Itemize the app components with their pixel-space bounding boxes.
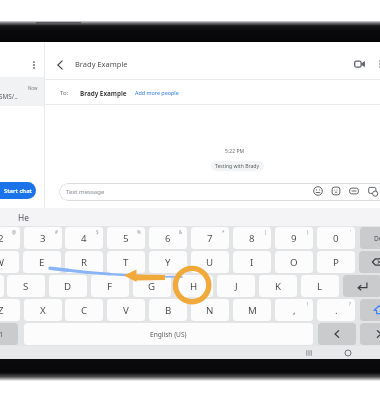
button[interactable]: Text message [59, 183, 380, 201]
button[interactable]: J [217, 275, 255, 297]
button[interactable]: Video call [353, 57, 367, 71]
button[interactable]: Gallery [367, 185, 379, 197]
button[interactable]: . [317, 299, 355, 321]
staticText: X [40, 304, 46, 317]
button[interactable]: I [233, 251, 271, 273]
staticText: # [55, 229, 58, 235]
button[interactable]: Now [0, 77, 44, 106]
staticText: 0 [333, 232, 339, 245]
button[interactable]: More options [374, 58, 380, 70]
button[interactable]: shift [360, 299, 380, 321]
button[interactable]: 6 [149, 227, 187, 249]
button[interactable]: backspace [359, 251, 380, 273]
button[interactable]: Y [149, 251, 187, 273]
button[interactable]: N [191, 299, 229, 321]
button[interactable]: U [191, 251, 229, 273]
button[interactable]: L [301, 275, 339, 297]
button[interactable]: , [275, 299, 313, 321]
staticText: 8 [249, 232, 255, 245]
button[interactable]: T [107, 251, 145, 273]
staticText: * [222, 229, 225, 235]
button[interactable]: right [360, 323, 380, 345]
button[interactable]: 9 [275, 227, 313, 249]
button[interactable]: P [317, 251, 355, 273]
staticText: V [123, 304, 129, 317]
staticText: 5 [123, 232, 129, 245]
staticText: P [333, 256, 339, 269]
staticText: & [179, 229, 183, 235]
staticText: O [290, 256, 298, 269]
staticText: M [248, 304, 257, 317]
button[interactable]: Start chat [0, 182, 36, 199]
staticText: J [235, 280, 238, 293]
staticText: 7 [207, 232, 213, 245]
staticText: 4 [81, 232, 87, 245]
button[interactable]: K [259, 275, 297, 297]
other: enter [355, 279, 369, 293]
staticText: K [275, 280, 281, 293]
button[interactable]: X [24, 299, 62, 321]
button[interactable]: He [18, 212, 29, 223]
button[interactable]: enter [343, 275, 380, 297]
staticText: ' [350, 229, 351, 235]
button[interactable]: F [91, 275, 129, 297]
button[interactable]: S [7, 275, 45, 297]
staticText: Testing with Brady [215, 163, 260, 170]
button[interactable]: GIF [348, 185, 360, 197]
staticText: @ [12, 229, 16, 235]
staticText: E [39, 256, 45, 269]
button[interactable]: V [107, 299, 145, 321]
button[interactable]: #1 [0, 323, 18, 345]
button[interactable]: left [318, 323, 356, 345]
button[interactable]: Del [360, 227, 380, 249]
button[interactable]: E [23, 251, 61, 273]
staticText: . [335, 304, 338, 317]
button[interactable]: G [133, 275, 171, 297]
button[interactable]: 7 [191, 227, 229, 249]
button[interactable]: W [0, 251, 19, 273]
staticText: $ [96, 229, 99, 235]
staticText: Start chat [4, 187, 32, 195]
staticText: N [206, 304, 214, 317]
staticText: Y [165, 256, 171, 269]
button[interactable]: 8 [233, 227, 271, 249]
staticText: 5:22 PM [225, 148, 245, 155]
staticText: H [190, 280, 198, 293]
staticText: #1 [0, 330, 4, 339]
button[interactable]: Recents [303, 347, 315, 359]
button[interactable]: 0 [317, 227, 355, 249]
button[interactable] [0, 275, 4, 297]
button[interactable]: Z [0, 299, 20, 321]
staticText: ( [265, 229, 267, 235]
staticText: 3 [40, 232, 46, 245]
button[interactable]: M [233, 299, 271, 321]
button[interactable]: 2 [0, 227, 20, 249]
button[interactable]: 3 [24, 227, 62, 249]
button[interactable]: English (US) [24, 323, 313, 345]
button[interactable]: C [65, 299, 103, 321]
other: right [372, 327, 380, 341]
staticText: S [23, 280, 29, 293]
staticText: C [81, 304, 88, 317]
staticText: ) [307, 229, 309, 235]
button[interactable]: O [275, 251, 313, 273]
staticText: English (US) [150, 330, 187, 339]
button[interactable]: 4 [65, 227, 103, 249]
button[interactable]: 5 [107, 227, 145, 249]
button[interactable]: Stickers [330, 185, 342, 197]
staticText: Del [374, 234, 380, 243]
other: left [330, 327, 344, 341]
other: shift [372, 303, 380, 317]
button[interactable]: Add more people [135, 89, 179, 96]
button[interactable]: H [175, 275, 213, 297]
button[interactable]: Back [53, 58, 67, 72]
button[interactable]: B [149, 299, 187, 321]
button[interactable]: Emoji [312, 185, 324, 197]
button[interactable]: More options [28, 59, 40, 71]
staticText: U [206, 256, 214, 269]
other: backspace [371, 255, 380, 269]
button[interactable]: Home [342, 347, 354, 359]
button[interactable]: R [65, 251, 103, 273]
button[interactable]: D [49, 275, 87, 297]
staticText: 2 [0, 232, 4, 245]
